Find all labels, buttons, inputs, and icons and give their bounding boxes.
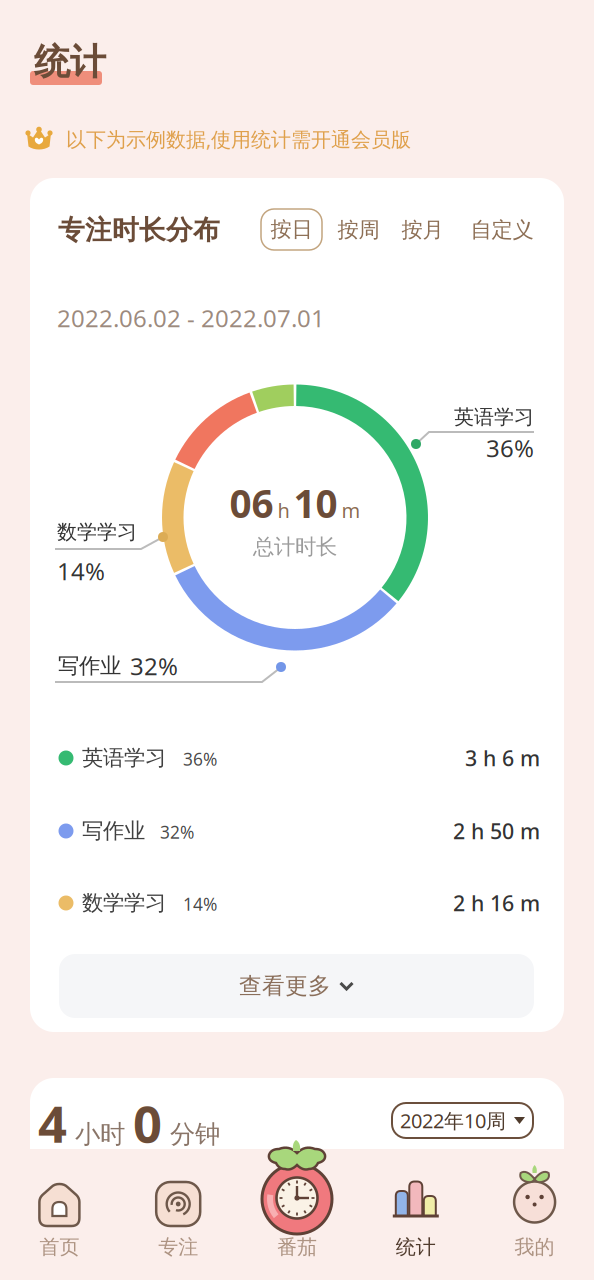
staticText: 小时 xyxy=(75,1119,125,1150)
staticText: 英语学习 xyxy=(454,405,534,429)
staticText: 专注时长分布 xyxy=(58,214,220,246)
staticText: 总计时长 xyxy=(253,534,337,560)
staticText: 10 xyxy=(293,477,337,529)
staticText: 36% xyxy=(183,747,217,770)
staticText: 4 xyxy=(38,1089,67,1157)
staticText: 36% xyxy=(486,432,534,464)
staticText: 写作业 xyxy=(82,818,145,844)
staticText: 自定义 xyxy=(470,217,533,243)
staticText: 统计 xyxy=(396,1235,436,1259)
staticText: 按日 xyxy=(270,216,312,243)
button[interactable]: 首页 xyxy=(0,1149,119,1280)
staticText: 06 xyxy=(229,477,273,529)
staticText: 32% xyxy=(160,820,194,843)
staticText: 我的 xyxy=(515,1235,555,1259)
staticText: m xyxy=(341,497,360,524)
staticText: 英语学习 xyxy=(82,745,166,771)
staticText: 按月 xyxy=(401,217,443,243)
staticText: h xyxy=(277,497,289,524)
staticText: 3 h 6 m xyxy=(465,744,540,772)
button[interactable]: 按月 xyxy=(392,208,452,252)
staticText: 分钟 xyxy=(170,1119,220,1150)
button[interactable]: 2022年10周 xyxy=(392,1103,533,1138)
button[interactable]: 专注 xyxy=(119,1149,238,1280)
staticText: 以下为示例数据,使用统计需开通会员版 xyxy=(66,126,411,152)
button[interactable]: 以下为示例数据,使用统计需开通会员版 xyxy=(25,126,411,152)
staticText: 查看更多 xyxy=(239,972,331,1000)
staticText: 数学学习 xyxy=(57,520,137,544)
button[interactable]: 番茄 xyxy=(237,1149,356,1280)
staticText: 0 xyxy=(133,1089,162,1157)
staticText: 写作业 xyxy=(58,653,121,679)
button[interactable]: 按周 xyxy=(328,208,388,252)
button[interactable]: 按日 xyxy=(261,209,322,250)
staticText: 统计 xyxy=(34,40,106,84)
staticText: 按周 xyxy=(337,217,379,243)
staticText: 32% xyxy=(130,650,178,682)
staticText: 首页 xyxy=(39,1235,79,1259)
staticText: 2022.06.02 - 2022.07.01 xyxy=(57,302,325,334)
staticText: 番茄 xyxy=(277,1235,317,1259)
staticText: 2 h 50 m xyxy=(453,817,540,845)
staticText: 2 h 16 m xyxy=(453,889,540,917)
staticText: 14% xyxy=(57,555,105,587)
staticText: 数学学习 xyxy=(82,890,166,916)
button[interactable]: 我的 xyxy=(475,1149,594,1280)
staticText: 2022年10周 xyxy=(400,1107,506,1134)
button[interactable]: 自定义 xyxy=(462,208,542,252)
staticText: 14% xyxy=(183,892,217,915)
staticText: 专注 xyxy=(158,1235,198,1259)
button[interactable]: 统计 xyxy=(356,1149,475,1280)
button[interactable]: 查看更多 xyxy=(59,954,534,1018)
